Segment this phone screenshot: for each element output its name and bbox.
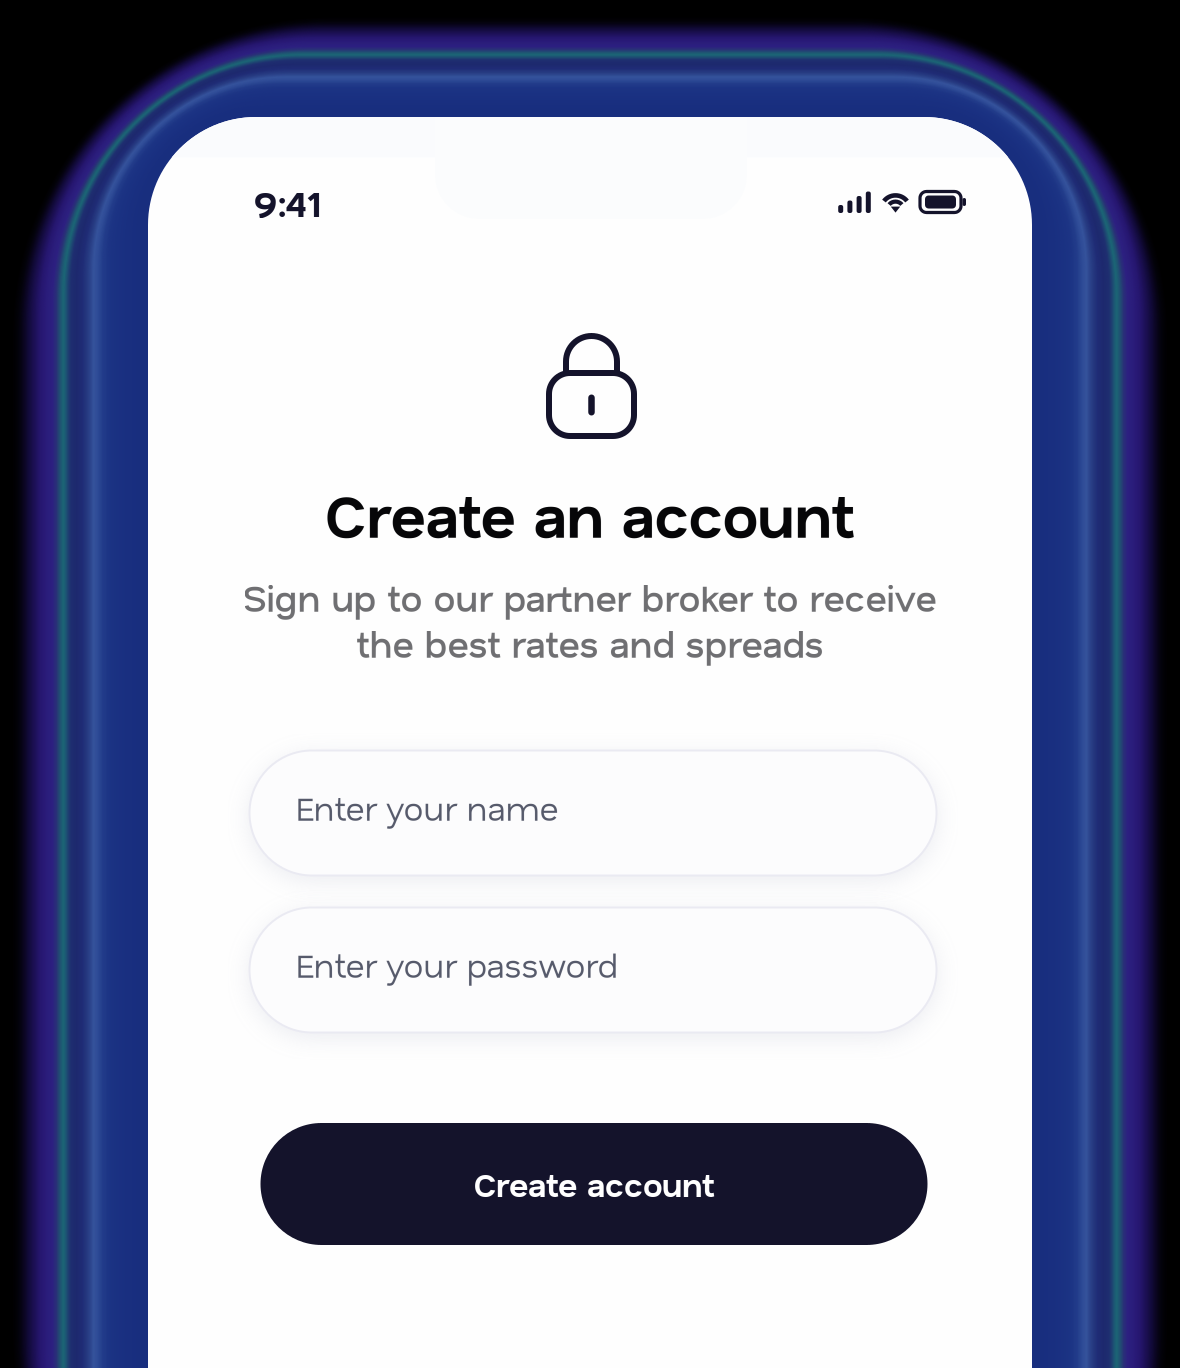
staticText: Sign up to our partner broker to receive	[243, 573, 936, 621]
staticText: Enter your name	[295, 786, 558, 829]
button[interactable]: Enter your name	[249, 750, 936, 875]
staticText: Enter your password	[295, 943, 618, 986]
staticText: 9:41	[254, 178, 321, 226]
staticText: Create an account	[325, 475, 854, 552]
button[interactable]: Enter your password	[249, 907, 936, 1032]
staticText: Create account	[474, 1163, 714, 1205]
staticText: the best rates and spreads	[356, 619, 823, 667]
button[interactable]: Create account	[260, 1123, 927, 1245]
